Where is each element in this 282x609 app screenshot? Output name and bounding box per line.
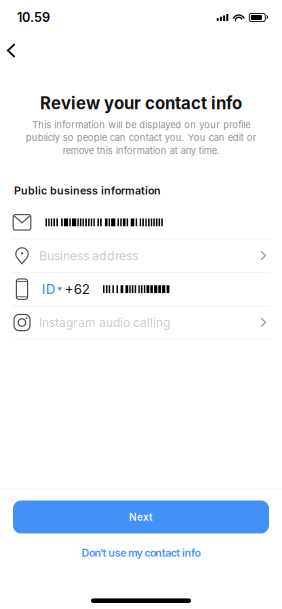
staticText: Don't use my contact info: [82, 546, 200, 559]
staticText: Review your contact info: [40, 93, 242, 113]
button[interactable]: [0, 206, 282, 238]
button[interactable]: Next: [13, 500, 269, 533]
staticText: 10.59: [17, 10, 50, 25]
button[interactable]: ID: [0, 273, 282, 305]
staticText: Business address: [39, 248, 138, 263]
button[interactable]: Don't use my contact info: [82, 539, 200, 566]
button[interactable]: Instagram audio calling: [0, 306, 282, 339]
staticText: Next: [129, 511, 153, 523]
staticText: +62: [65, 281, 90, 297]
staticText: This information will be displayed on yo…: [25, 119, 256, 156]
staticText: Instagram audio calling: [39, 315, 170, 330]
staticText: Public business information: [14, 184, 161, 197]
button[interactable]: Business address: [0, 239, 282, 272]
button[interactable]: Back: [0, 35, 28, 66]
staticText: ID: [42, 281, 56, 297]
